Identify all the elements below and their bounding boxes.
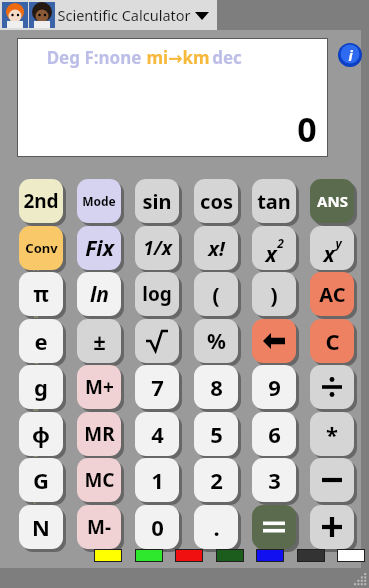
staticText: E xyxy=(33,448,38,459)
staticText: y xyxy=(335,235,342,251)
button[interactable]: Mode xyxy=(77,179,121,223)
staticText: 4 xyxy=(151,419,164,449)
button[interactable]: Color swatch 6 xyxy=(297,549,325,562)
staticText: MC xyxy=(84,467,115,493)
staticText: C xyxy=(325,326,340,356)
button[interactable]: x xyxy=(252,226,296,270)
button[interactable]: Color swatch 1 xyxy=(94,549,122,562)
staticText: 2 xyxy=(210,465,223,495)
button[interactable]: π xyxy=(19,272,63,316)
button[interactable]: 1 xyxy=(135,458,179,502)
button[interactable]: Backspace xyxy=(252,319,296,363)
staticText: * xyxy=(326,419,338,449)
staticText: Mode xyxy=(82,193,116,209)
button[interactable]: . xyxy=(194,505,238,549)
staticText: 2 xyxy=(277,235,284,251)
button[interactable]: C xyxy=(310,319,354,363)
button[interactable]: G xyxy=(19,458,63,502)
button[interactable]: 0 xyxy=(135,505,179,549)
staticText: φ xyxy=(32,419,50,449)
button[interactable]: ( xyxy=(194,272,238,316)
staticText: 8 xyxy=(210,372,223,402)
button[interactable]: % xyxy=(194,319,238,363)
button[interactable]: 2 xyxy=(194,458,238,502)
button[interactable]: sin xyxy=(135,179,179,223)
staticText: A xyxy=(33,262,39,273)
staticText: cos xyxy=(200,188,233,215)
button[interactable]: MC xyxy=(77,458,121,502)
button[interactable]: √ xyxy=(135,319,179,363)
button[interactable]: tan xyxy=(252,179,296,223)
staticText: F xyxy=(33,495,38,506)
button[interactable]: Color swatch 7 xyxy=(337,549,365,562)
staticText: B xyxy=(33,309,39,320)
button[interactable]: Equals xyxy=(252,505,296,549)
staticText: ± xyxy=(93,326,106,356)
staticText: e xyxy=(34,326,48,356)
staticText: ) xyxy=(270,279,278,309)
button[interactable]: Info xyxy=(338,43,362,67)
button[interactable]: N xyxy=(19,505,63,549)
button[interactable]: e xyxy=(19,319,63,363)
button[interactable]: g xyxy=(19,365,63,409)
staticText: Conv xyxy=(25,239,58,257)
staticText: mi→km xyxy=(144,46,212,69)
staticText: % xyxy=(207,327,226,356)
staticText: 3 xyxy=(268,465,281,495)
button[interactable]: ln xyxy=(77,272,121,316)
button[interactable]: Color swatch 5 xyxy=(256,549,284,562)
button[interactable]: Fix xyxy=(77,226,121,270)
staticText: 1/x xyxy=(143,235,172,261)
button[interactable]: AC xyxy=(310,272,354,316)
staticText: i xyxy=(348,46,353,65)
button[interactable]: cos xyxy=(194,179,238,223)
button[interactable]: 4 xyxy=(135,412,179,456)
button[interactable]: Open menu xyxy=(194,10,210,22)
staticText: π xyxy=(33,280,49,309)
button[interactable]: M+ xyxy=(77,365,121,409)
button[interactable]: 1/x xyxy=(135,226,179,270)
button[interactable]: log xyxy=(135,272,179,316)
staticText: Fix xyxy=(85,234,114,263)
button[interactable]: 3 xyxy=(252,458,296,502)
button[interactable]: Scientific Calculator xyxy=(57,5,191,25)
staticText: 2nd xyxy=(23,188,59,214)
staticText: 9 xyxy=(268,372,281,402)
button[interactable]: Color swatch 2 xyxy=(135,549,163,562)
staticText: g xyxy=(34,372,48,402)
staticText: . xyxy=(213,512,220,542)
button[interactable]: ANS xyxy=(310,179,354,223)
button[interactable]: 5 xyxy=(194,412,238,456)
button[interactable]: Color swatch 4 xyxy=(216,549,244,562)
button[interactable]: ± xyxy=(77,319,121,363)
button[interactable]: Color swatch 3 xyxy=(175,549,203,562)
staticText: 1 xyxy=(151,465,164,495)
staticText: tan xyxy=(257,188,291,215)
staticText: M- xyxy=(87,514,111,540)
button[interactable]: 6 xyxy=(252,412,296,456)
staticText: 7 xyxy=(151,372,164,402)
button[interactable]: 7 xyxy=(135,365,179,409)
button[interactable]: Divide xyxy=(310,365,354,409)
staticText: ln xyxy=(90,280,109,309)
button[interactable]: φ xyxy=(19,412,63,456)
staticText: Deg F:none xyxy=(44,46,144,69)
button[interactable]: 9 xyxy=(252,365,296,409)
button[interactable]: * xyxy=(310,412,354,456)
button[interactable]: x xyxy=(310,226,354,270)
staticText: D xyxy=(33,402,39,413)
staticText: G xyxy=(33,465,49,495)
button[interactable]: Conv xyxy=(19,226,63,270)
button[interactable]: Plus xyxy=(310,505,354,549)
staticText: 0 xyxy=(151,512,164,542)
staticText: C xyxy=(33,355,39,366)
button[interactable]: ) xyxy=(252,272,296,316)
button[interactable]: 2nd xyxy=(19,179,63,223)
button[interactable]: Minus xyxy=(310,458,354,502)
staticText: dec xyxy=(212,46,242,69)
staticText: N xyxy=(32,512,50,542)
button[interactable]: x! xyxy=(194,226,238,270)
button[interactable]: MR xyxy=(77,412,121,456)
button[interactable]: 8 xyxy=(194,365,238,409)
button[interactable]: M- xyxy=(77,505,121,549)
